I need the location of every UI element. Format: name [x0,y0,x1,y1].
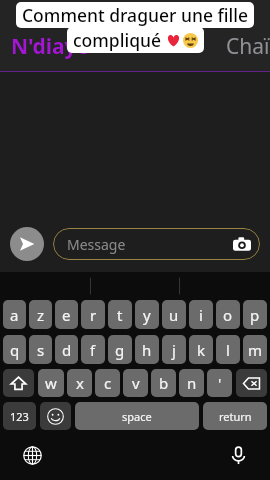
staticText: u [169,305,179,325]
button[interactable]: u [162,300,186,329]
staticText: w [45,373,57,393]
staticText: p [250,305,260,325]
staticText: x [76,373,84,393]
staticText: k [197,340,206,360]
button[interactable]: Send [10,227,44,261]
button[interactable]: y [135,300,159,329]
staticText: d [62,340,72,360]
staticText: j [172,340,176,360]
staticText: m [248,340,263,360]
button[interactable]: m [243,335,267,364]
button[interactable]: k [189,335,213,364]
button[interactable]: Backspace [236,369,267,397]
button[interactable]: Message [53,228,260,260]
staticText: c [104,373,112,393]
other: Camera [233,235,251,253]
staticText: g [115,340,125,360]
staticText: h [142,340,152,360]
staticText: f [90,340,96,360]
button[interactable]: h [135,335,159,364]
button[interactable]: e [55,300,78,329]
button[interactable]: p [243,300,267,329]
staticText: t [117,305,123,325]
staticText: r [90,305,97,325]
button[interactable]: s [29,335,52,364]
button[interactable]: d [55,335,78,364]
staticText: a [10,305,19,325]
button[interactable]: x [67,369,92,397]
button[interactable]: z [29,300,52,329]
staticText: z [37,305,45,325]
staticText: compliqué [73,28,166,52]
button[interactable]: Change keyboard [19,442,45,468]
staticText: l [226,340,230,360]
button[interactable]: space [75,402,199,430]
button[interactable]: return [203,402,267,430]
staticText: 123 [10,409,29,424]
button[interactable]: Voice input [225,442,251,468]
button[interactable]: c [95,369,120,397]
button[interactable]: v [123,369,148,397]
staticText: s [37,340,45,360]
staticText: b [159,373,169,393]
staticText: q [10,340,20,360]
button[interactable]: ' [207,369,232,397]
button[interactable]: w [38,369,64,397]
button[interactable]: Emoji [40,402,71,430]
staticText: Chaï [226,32,270,61]
button[interactable]: f [81,335,105,364]
staticText: return [219,409,252,424]
button[interactable]: q [3,335,26,364]
button[interactable]: Shift [3,369,34,397]
button[interactable]: g [108,335,132,364]
staticText: Message [67,235,233,254]
button[interactable]: t [108,300,132,329]
staticText: n [187,373,197,393]
button[interactable]: l [216,335,240,364]
button[interactable]: b [151,369,176,397]
button[interactable]: a [3,300,26,329]
button[interactable]: j [162,335,186,364]
staticText: o [223,305,233,325]
button[interactable]: o [216,300,240,329]
staticText: space [122,409,152,424]
button[interactable]: i [189,300,213,329]
button[interactable]: r [81,300,105,329]
staticText: i [199,305,203,325]
staticText: y [143,305,151,325]
button[interactable]: n [179,369,204,397]
button[interactable]: 123 [3,402,36,430]
staticText: ' [218,373,222,393]
staticText: Comment draguer une fille [22,3,248,27]
staticText: e [62,305,71,325]
staticText: v [132,373,140,393]
staticText: N'diaye [11,32,90,61]
